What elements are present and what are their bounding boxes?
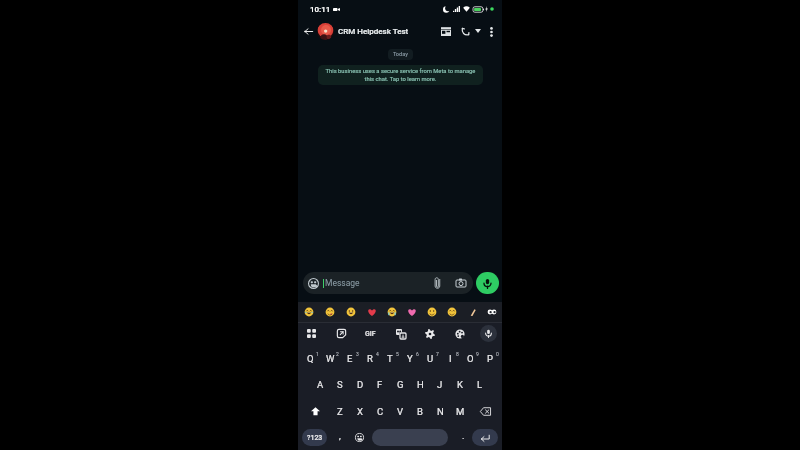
button[interactable]: Emoji	[361, 302, 382, 322]
staticText: K	[457, 379, 463, 390]
button[interactable]: Camera	[454, 276, 468, 290]
staticText: B	[417, 406, 423, 417]
staticText: D	[357, 379, 364, 390]
staticText: R	[367, 353, 373, 364]
button[interactable]: Q	[300, 344, 320, 371]
staticText: A	[317, 379, 324, 390]
button[interactable]: Emoji	[298, 302, 319, 322]
button[interactable]: S	[330, 371, 350, 398]
button[interactable]: F	[370, 371, 390, 398]
button[interactable]: Today	[388, 49, 413, 60]
staticText: I	[449, 353, 452, 364]
button[interactable]: U	[420, 344, 440, 371]
button[interactable]: Space	[372, 429, 448, 446]
button[interactable]: Stickers	[333, 325, 350, 342]
button[interactable]: Emoji	[462, 302, 482, 322]
button[interactable]: Translate	[392, 325, 409, 342]
button[interactable]: H	[410, 371, 430, 398]
button[interactable]: Emoji	[442, 302, 462, 322]
staticText: Y	[407, 353, 413, 364]
button[interactable]: Emoji	[340, 302, 361, 322]
staticText: J	[437, 379, 443, 390]
staticText: G	[397, 379, 404, 390]
staticText: N	[437, 406, 444, 417]
staticText: Message	[325, 278, 360, 288]
button[interactable]: More options	[485, 25, 498, 38]
button[interactable]: O	[460, 344, 480, 371]
button[interactable]: I	[440, 344, 460, 371]
button[interactable]: W	[320, 344, 340, 371]
staticText: ,	[339, 431, 341, 442]
button[interactable]: R	[360, 344, 380, 371]
button[interactable]: Emoji	[402, 302, 422, 322]
staticText: M	[456, 406, 465, 417]
staticText: GIF	[365, 330, 376, 338]
button[interactable]: Call	[458, 24, 472, 38]
button[interactable]: E	[340, 344, 360, 371]
button[interactable]: Emoji	[482, 302, 502, 322]
staticText: 10:11	[310, 5, 331, 14]
button[interactable]: G	[390, 371, 410, 398]
button[interactable]: Emoji	[382, 302, 402, 322]
staticText: 1	[316, 351, 319, 357]
button[interactable]: M	[450, 398, 470, 425]
staticText: P	[487, 353, 493, 364]
staticText: CRM Helpdesk Test	[338, 27, 409, 36]
button[interactable]: D	[350, 371, 370, 398]
button[interactable]: Y	[400, 344, 420, 371]
button[interactable]: Business catalog	[439, 24, 453, 38]
staticText: Today	[393, 51, 408, 58]
button[interactable]: P	[480, 344, 500, 371]
button[interactable]: Apps	[303, 325, 320, 342]
staticText: This business uses a secure service from…	[322, 68, 479, 82]
button[interactable]: This business uses a secure service from…	[318, 65, 483, 85]
staticText: 7	[436, 351, 439, 357]
staticText: 5	[396, 351, 399, 357]
button[interactable]: Profile photo	[317, 23, 334, 40]
staticText: Z	[337, 406, 343, 417]
button[interactable]: Settings	[421, 325, 438, 342]
button[interactable]: N	[430, 398, 450, 425]
staticText: V	[397, 406, 404, 417]
button[interactable]: Emoji	[422, 302, 442, 322]
button[interactable]: Emoji	[319, 302, 340, 322]
staticText: 8	[456, 351, 459, 357]
staticText: 4	[376, 351, 379, 357]
button[interactable]: T	[380, 344, 400, 371]
button[interactable]: .	[454, 425, 472, 450]
button[interactable]: Voice input	[480, 325, 497, 342]
button[interactable]: K	[450, 371, 470, 398]
staticText: Q	[307, 353, 314, 364]
staticText: F	[377, 379, 383, 390]
button[interactable]: ?123	[302, 429, 327, 446]
button[interactable]: ,	[327, 425, 353, 450]
button[interactable]: Voice message	[476, 272, 499, 294]
button[interactable]: Attach	[430, 276, 444, 290]
button[interactable]: A	[310, 371, 330, 398]
button[interactable]: L	[470, 371, 490, 398]
button[interactable]: Z	[330, 398, 350, 425]
button[interactable]: Back	[301, 24, 315, 38]
staticText: 0	[496, 351, 499, 357]
button[interactable]: C	[370, 398, 390, 425]
staticText: 2	[336, 351, 339, 357]
button[interactable]: GIF	[362, 325, 379, 342]
button[interactable]: Backspace	[470, 398, 500, 425]
staticText: 9	[476, 351, 479, 357]
staticText: T	[387, 353, 393, 364]
button[interactable]: J	[430, 371, 450, 398]
staticText: 3	[356, 351, 359, 357]
staticText: W	[326, 353, 335, 364]
button[interactable]: V	[390, 398, 410, 425]
staticText: O	[467, 353, 474, 364]
button[interactable]: X	[350, 398, 370, 425]
staticText: ?123	[307, 434, 323, 442]
button[interactable]: B	[410, 398, 430, 425]
button[interactable]: Call options	[473, 26, 483, 36]
button[interactable]: Enter	[472, 429, 498, 446]
button[interactable]: Shift	[300, 398, 330, 425]
button[interactable]: Emoji	[353, 425, 366, 450]
button[interactable]: Themes	[451, 325, 468, 342]
button[interactable]: Message	[303, 272, 473, 294]
staticText: X	[357, 406, 363, 417]
